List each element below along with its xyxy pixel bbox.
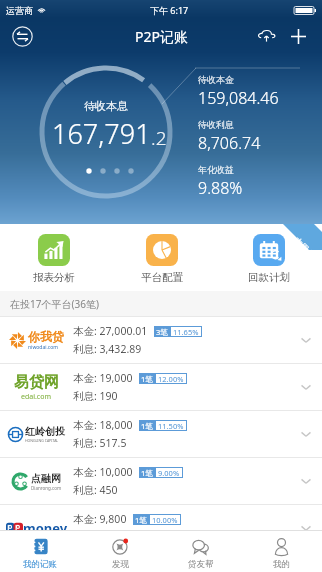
staticText: 贷友帮: [188, 559, 214, 570]
staticText: 本金: 9,800: [73, 512, 127, 526]
staticText: 利息: 450: [73, 483, 118, 497]
button[interactable]: 点融网: [0, 457, 322, 504]
staticText: HONGLING CAPITAL: [25, 438, 59, 443]
button[interactable]: 你我贷: [0, 316, 322, 363]
staticText: 本金: 18,000: [73, 418, 133, 432]
staticText: 我的: [273, 559, 290, 570]
staticText: money: [23, 519, 68, 537]
staticText: 利息: 517.5: [73, 436, 127, 450]
button[interactable]: Add record: [283, 21, 313, 51]
staticText: 12.00%: [158, 374, 184, 384]
staticText: 1笔: [135, 515, 147, 525]
staticText: P2P记账: [135, 27, 188, 46]
staticText: 159,084.46: [198, 87, 279, 109]
button[interactable]: 报表分析: [0, 224, 108, 291]
button[interactable]: 红岭创投: [0, 410, 322, 457]
staticText: 10.00%: [152, 515, 178, 525]
button[interactable]: 我的记账: [0, 531, 80, 572]
button[interactable]: 回款计划: [215, 224, 322, 291]
staticText: 9.88%: [198, 177, 243, 199]
staticText: .2: [151, 125, 167, 151]
staticText: 11.50%: [158, 421, 184, 431]
staticText: 待收本金: [198, 74, 234, 85]
staticText: 我的记账: [23, 559, 57, 570]
staticText: 红岭创投: [25, 425, 65, 438]
staticText: 易贷网: [14, 373, 59, 392]
staticText: 本金: 19,000: [73, 371, 133, 385]
staticText: 平台配置: [141, 271, 183, 284]
staticText: 167,791: [52, 115, 151, 152]
staticText: edai.com: [21, 392, 52, 402]
staticText: 11.65%: [173, 327, 199, 337]
staticText: 1笔: [141, 421, 153, 431]
button[interactable]: 我的: [241, 531, 322, 572]
staticText: 在投17个平台(36笔): [10, 297, 99, 311]
button[interactable]: 发现: [80, 531, 160, 572]
staticText: 点融网: [31, 472, 61, 485]
staticText: 利息: 245.8: [73, 530, 127, 544]
staticText: 年化收益: [198, 164, 234, 175]
staticText: 运营商: [6, 5, 33, 16]
staticText: 8,706.74: [198, 132, 261, 154]
staticText: 本金: 27,000.01: [73, 324, 148, 338]
staticText: 利息: 3,432.89: [73, 342, 142, 356]
staticText: niwodai.com: [28, 344, 58, 351]
staticText: 1笔: [141, 468, 153, 478]
staticText: 利息: 190: [73, 389, 118, 403]
button[interactable]: Switch account: [10, 24, 34, 48]
button[interactable]: 平台配置: [108, 224, 215, 291]
staticText: 待收本息: [84, 99, 128, 113]
staticText: 本金: 10,000: [73, 465, 133, 479]
button[interactable]: money: [0, 504, 322, 551]
staticText: 下午 6:17: [150, 4, 189, 16]
button[interactable]: Backup to cloud: [251, 21, 281, 51]
staticText: 3笔: [156, 327, 168, 337]
staticText: 回款计划: [248, 271, 290, 284]
staticText: 你我贷: [28, 329, 64, 344]
staticText: 报表分析: [33, 271, 75, 284]
button[interactable]: 贷友帮: [160, 531, 241, 572]
staticText: 待收利息: [198, 119, 234, 130]
staticText: 1笔: [141, 374, 153, 384]
staticText: 本周4笔: [292, 234, 321, 263]
staticText: 发现: [112, 559, 129, 570]
staticText: Dianrong.com: [31, 485, 62, 491]
button[interactable]: 易贷网: [0, 363, 322, 410]
staticText: 9.00%: [158, 468, 180, 478]
